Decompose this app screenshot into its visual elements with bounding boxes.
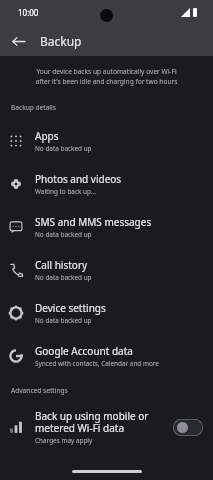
staticText: Back up using mobile or metered Wi-Fi da…: [35, 409, 149, 435]
staticText: SMS and MMS messages: [35, 215, 152, 229]
staticText: Backup details: [11, 103, 56, 112]
staticText: 10:00: [18, 7, 39, 18]
staticText: Device settings: [35, 301, 106, 315]
staticText: No data backed up: [35, 316, 92, 325]
button[interactable]: Photos and videos: [0, 162, 213, 205]
button[interactable]: Back up using mobile or metered Wi-Fi da…: [0, 402, 213, 452]
staticText: No data backed up: [35, 273, 92, 282]
button[interactable]: SMS and MMS messages: [0, 205, 213, 248]
staticText: No data backed up: [35, 230, 92, 239]
staticText: Waiting to back up...: [35, 187, 97, 196]
staticText: Apps: [35, 129, 59, 143]
staticText: Google Account data: [35, 344, 133, 358]
staticText: Your device backs up automatically over …: [10, 67, 203, 86]
staticText: Advanced settings: [11, 386, 68, 395]
button[interactable]: Device settings: [0, 291, 213, 334]
staticText: Call history: [35, 258, 88, 272]
button[interactable]: Google Account data: [0, 334, 213, 377]
staticText: Photos and videos: [35, 172, 122, 186]
staticText: Backup: [40, 33, 82, 49]
staticText: Synced with contacts, Calendar and more: [35, 359, 159, 368]
button[interactable]: [173, 419, 203, 436]
staticText: Charges may apply: [35, 436, 93, 445]
button[interactable]: Apps: [0, 119, 213, 162]
button[interactable]: Back: [6, 29, 30, 53]
staticText: No data backed up: [35, 144, 92, 153]
button[interactable]: Call history: [0, 248, 213, 291]
